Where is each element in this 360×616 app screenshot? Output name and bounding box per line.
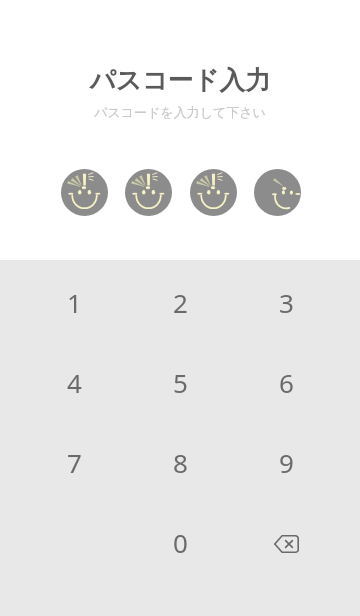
- button[interactable]: 6: [233, 342, 339, 422]
- button[interactable]: 7: [21, 422, 127, 502]
- button[interactable]: 8: [127, 422, 233, 502]
- button[interactable]: 2: [127, 262, 233, 342]
- staticText: 6: [279, 365, 294, 400]
- button[interactable]: 1: [21, 262, 127, 342]
- button[interactable]: 0: [127, 502, 233, 582]
- button[interactable]: 3: [233, 262, 339, 342]
- staticText: 1: [67, 285, 82, 320]
- staticText: 7: [67, 445, 82, 480]
- button[interactable]: 5: [127, 342, 233, 422]
- staticText: パスコードを入力して下さい: [0, 104, 360, 120]
- button[interactable]: 4: [21, 342, 127, 422]
- staticText: 0: [173, 525, 188, 560]
- staticText: パスコード入力: [0, 64, 360, 96]
- button[interactable]: 9: [233, 422, 339, 502]
- staticText: 5: [173, 365, 188, 400]
- button[interactable]: Backspace: [233, 502, 339, 582]
- staticText: 3: [279, 285, 294, 320]
- staticText: 4: [67, 365, 82, 400]
- staticText: 2: [173, 285, 188, 320]
- staticText: 9: [279, 445, 294, 480]
- staticText: 8: [173, 445, 188, 480]
